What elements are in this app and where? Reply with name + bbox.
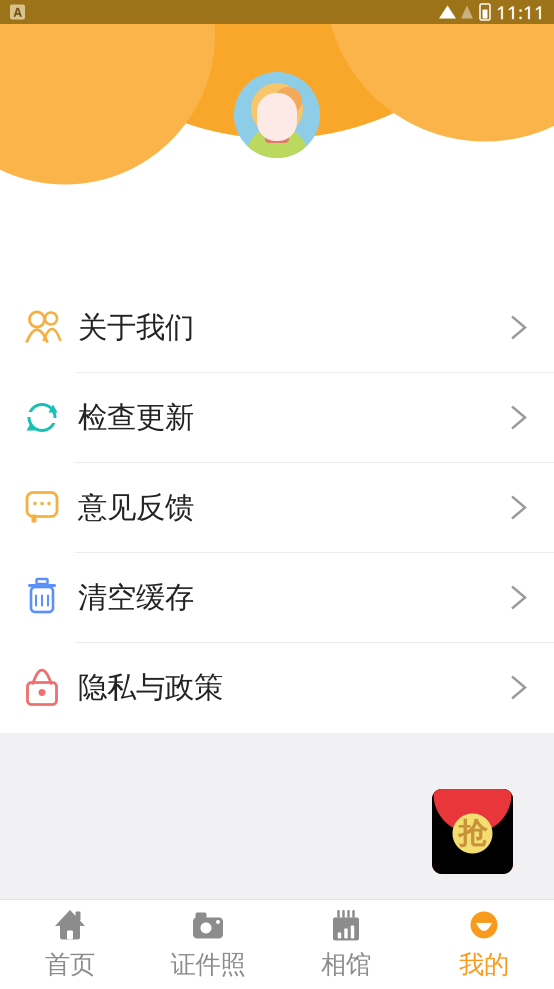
staticText: 意见反馈 — [78, 489, 194, 525]
button[interactable]: 清空缓存 — [0, 553, 554, 643]
staticText: 相馆 — [321, 949, 371, 980]
button[interactable]: 隐私与政策 — [0, 643, 554, 733]
button[interactable]: 意见反馈 — [0, 463, 554, 553]
staticText: 11:11 — [496, 0, 545, 24]
button[interactable]: 首页 — [1, 900, 139, 989]
button[interactable]: 检查更新 — [0, 373, 554, 463]
staticText: 隐私与政策 — [78, 669, 223, 705]
staticText: 清空缓存 — [78, 579, 194, 615]
button[interactable]: 关于我们 — [0, 283, 554, 373]
button[interactable]: 我的 — [415, 900, 553, 989]
button[interactable]: 证件照 — [139, 900, 277, 989]
button[interactable]: 相馆 — [277, 900, 415, 989]
staticText: A — [13, 4, 21, 20]
staticText: 证件照 — [170, 949, 245, 980]
staticText: 我的 — [459, 949, 509, 980]
staticText: 检查更新 — [78, 399, 194, 435]
staticText: 首页 — [45, 949, 95, 980]
button[interactable]: 抢红包 — [432, 789, 513, 874]
staticText: 抢 — [458, 815, 487, 851]
staticText: 关于我们 — [78, 309, 194, 345]
